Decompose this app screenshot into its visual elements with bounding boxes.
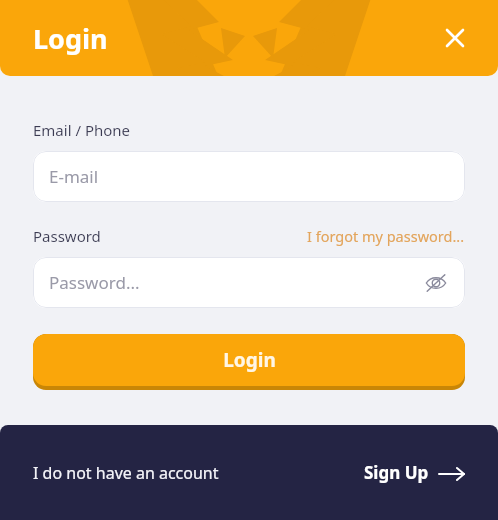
staticText: Email / Phone xyxy=(33,120,131,140)
button[interactable]: Close xyxy=(438,21,472,55)
button[interactable]: I do not have an account xyxy=(33,462,219,484)
staticText: Login xyxy=(33,20,108,57)
staticText: Login xyxy=(223,347,276,373)
staticText: I do not have an account xyxy=(33,462,219,484)
staticText: Password... xyxy=(49,271,140,294)
staticText: E-mail xyxy=(49,165,99,188)
staticText: Password xyxy=(33,226,101,246)
button[interactable]: E-mail xyxy=(33,151,465,202)
button[interactable]: Show password xyxy=(421,268,451,298)
button[interactable]: Login xyxy=(33,334,465,390)
button[interactable]: I forgot my password... xyxy=(307,226,465,246)
button[interactable]: Password... xyxy=(33,257,465,308)
staticText: I forgot my password... xyxy=(307,226,465,246)
staticText: Sign Up xyxy=(364,461,429,484)
button[interactable]: Sign Up xyxy=(364,461,465,484)
